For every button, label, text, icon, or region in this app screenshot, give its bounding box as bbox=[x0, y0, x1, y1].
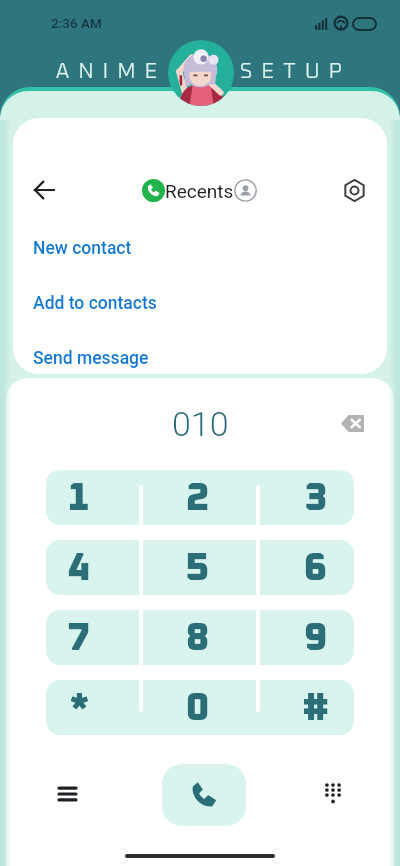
staticText: 2 bbox=[186, 478, 210, 518]
staticText: New contact bbox=[33, 238, 132, 259]
staticText: # bbox=[302, 688, 330, 728]
button[interactable]: # bbox=[251, 680, 354, 735]
staticText: Recents bbox=[165, 180, 234, 202]
button[interactable]: 6 bbox=[251, 540, 354, 595]
staticText: SETUP bbox=[240, 61, 352, 82]
staticText: Send message bbox=[33, 348, 149, 369]
staticText: 010 bbox=[172, 404, 229, 444]
staticText: 2:36 AM bbox=[51, 15, 102, 31]
button[interactable]: Back bbox=[22, 168, 66, 212]
button[interactable]: Menu bbox=[45, 772, 89, 816]
staticText: 6 bbox=[304, 548, 328, 588]
staticText: 9 bbox=[304, 618, 328, 658]
button[interactable]: 7 bbox=[46, 610, 148, 665]
staticText: 3 bbox=[304, 478, 328, 518]
button[interactable]: Call bbox=[162, 764, 246, 826]
staticText: Add to contacts bbox=[33, 293, 157, 314]
button[interactable]: 2 bbox=[148, 470, 251, 525]
button[interactable]: New contact bbox=[13, 221, 387, 276]
staticText: 0 bbox=[186, 688, 210, 728]
staticText: * bbox=[69, 688, 90, 728]
button[interactable]: 4 bbox=[46, 540, 148, 595]
button[interactable]: Settings bbox=[334, 170, 374, 210]
staticText: 8 bbox=[186, 618, 210, 658]
button[interactable]: 0 bbox=[148, 680, 251, 735]
staticText: 4 bbox=[67, 548, 91, 588]
button[interactable]: 9 bbox=[251, 610, 354, 665]
staticText: 1 bbox=[67, 478, 91, 518]
staticText: 7 bbox=[67, 618, 91, 658]
button[interactable]: * bbox=[46, 680, 148, 735]
button[interactable]: 1 bbox=[46, 470, 148, 525]
button[interactable]: 3 bbox=[251, 470, 354, 525]
button[interactable]: Dialpad bbox=[311, 771, 355, 815]
button[interactable]: 8 bbox=[148, 610, 251, 665]
button[interactable]: Add to contacts bbox=[13, 276, 387, 331]
staticText: ANIME bbox=[56, 61, 167, 82]
button[interactable]: 5 bbox=[148, 540, 251, 595]
staticText: 5 bbox=[186, 548, 210, 588]
button[interactable]: Send message bbox=[13, 331, 387, 374]
button[interactable]: Backspace bbox=[334, 405, 370, 441]
